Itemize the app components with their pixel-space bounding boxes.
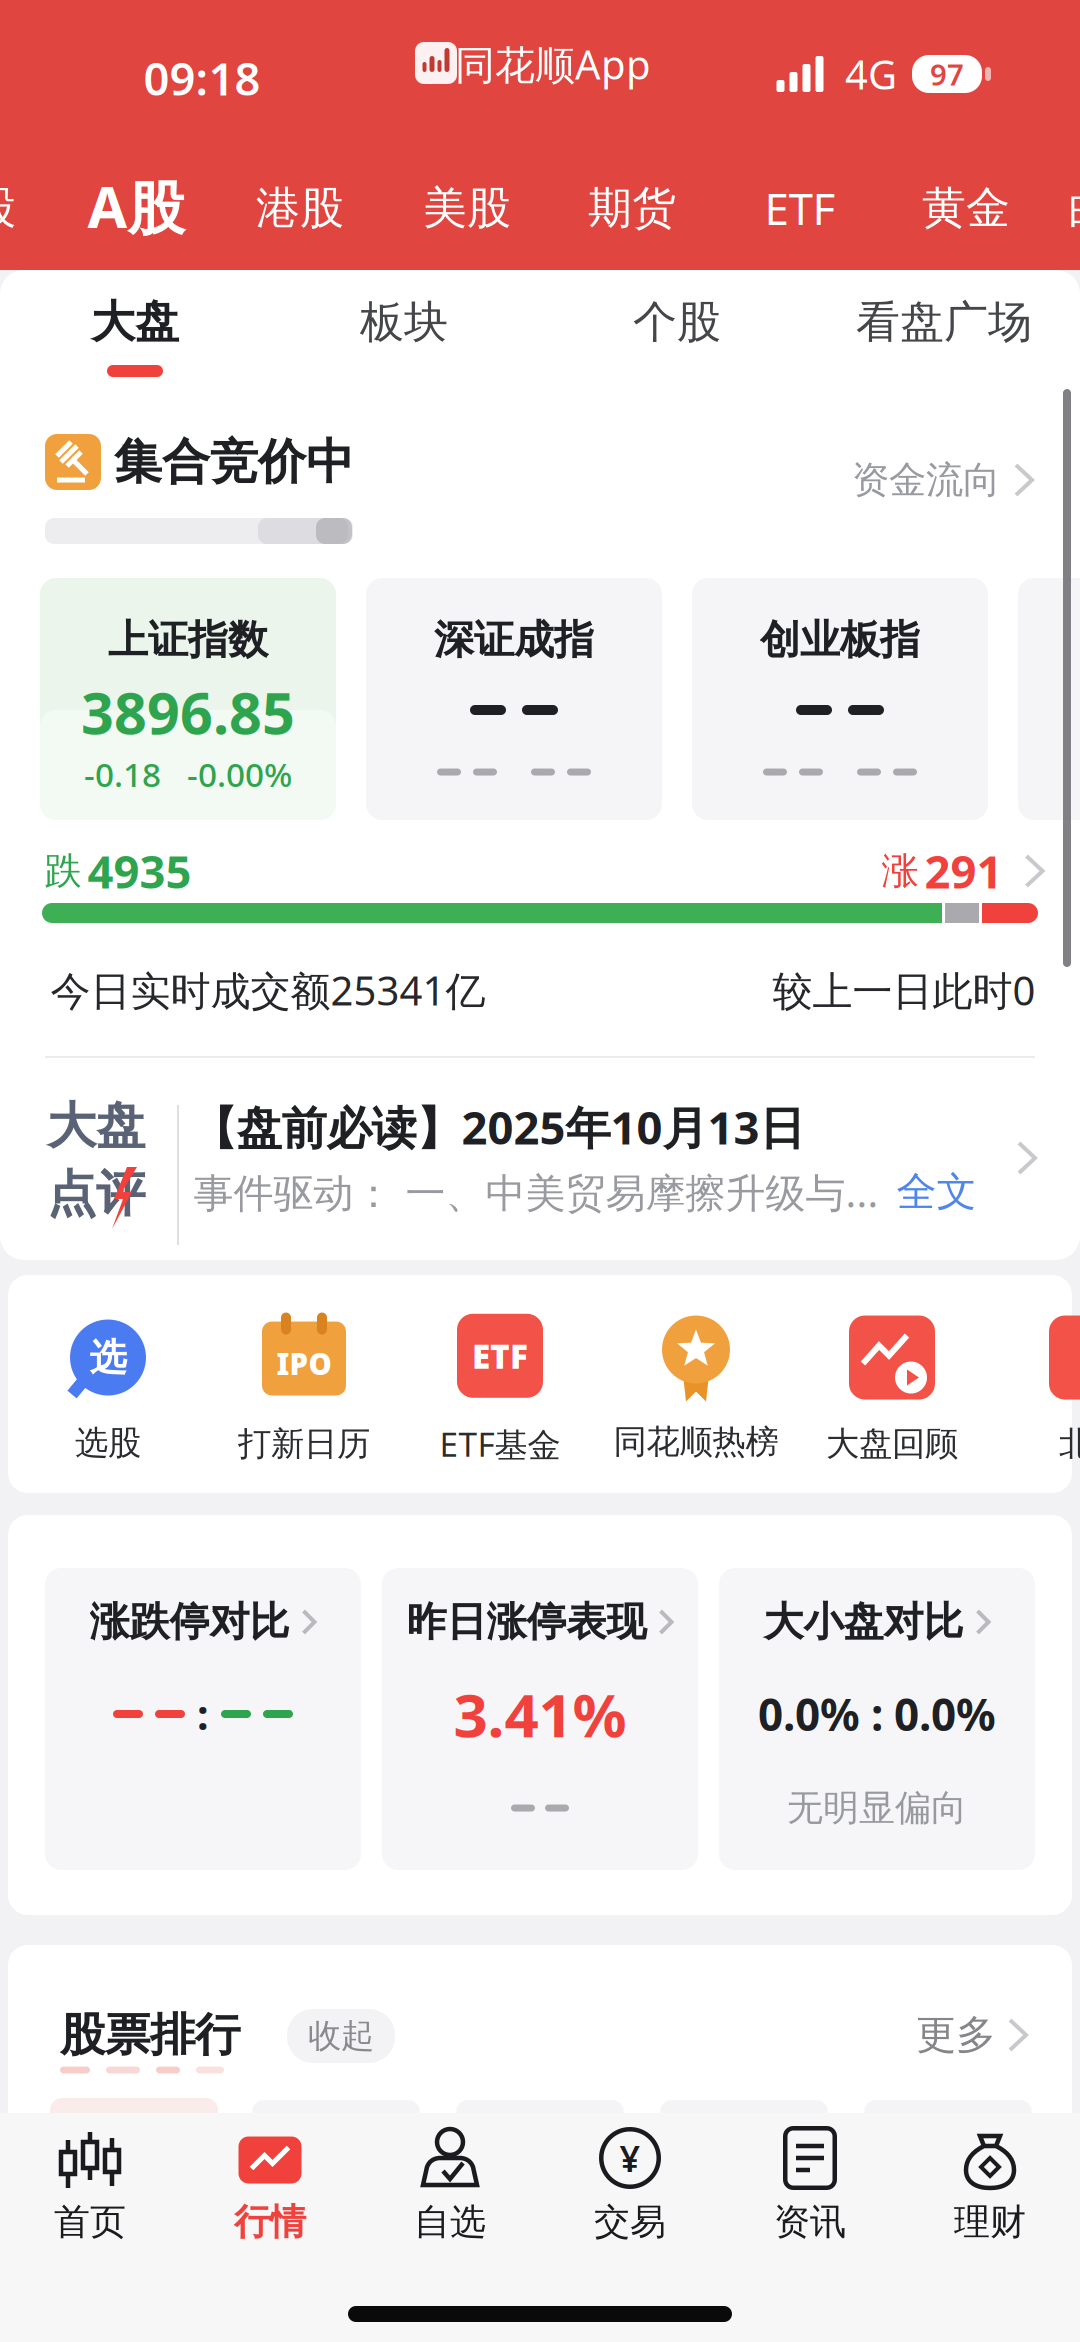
- staticText: 09:18: [143, 48, 260, 108]
- button[interactable]: 期货: [588, 181, 676, 235]
- staticText: 打新日历: [238, 1423, 370, 1464]
- button[interactable]: 黄金: [922, 181, 1010, 235]
- button[interactable]: 看盘广场: [856, 295, 1032, 349]
- staticText: 资讯: [774, 2200, 846, 2244]
- staticText: 黄金: [922, 181, 1010, 235]
- staticText: 理财: [954, 2200, 1026, 2244]
- button[interactable]: 港股: [256, 181, 344, 235]
- staticText: A股: [87, 168, 184, 244]
- button[interactable]: 股: [0, 181, 16, 235]
- button[interactable]: 深证成指: [366, 578, 662, 820]
- staticText: -0.18: [84, 752, 161, 796]
- staticText: 大盘: [47, 1096, 145, 1156]
- staticText: 资金流向: [852, 457, 1000, 503]
- staticText: 更多: [916, 2010, 996, 2059]
- staticText: 事件驱动： 一、中美贸易摩擦升级与...: [193, 1165, 878, 1218]
- staticText: 个股: [633, 295, 721, 349]
- staticText: 291: [924, 841, 1002, 901]
- staticText: 今日实时成交额25341亿: [50, 963, 485, 1016]
- staticText: 北交: [1059, 1423, 1080, 1464]
- button[interactable]: ¥: [595, 2116, 665, 2256]
- button[interactable]: 资讯: [775, 2116, 845, 2256]
- staticText: 期货: [588, 181, 676, 235]
- button[interactable]: 板块: [360, 295, 448, 349]
- button[interactable]: 首页: [55, 2116, 125, 2256]
- staticText: 无明显偏向: [787, 1786, 967, 1830]
- staticText: 大盘: [91, 295, 179, 349]
- staticText: 白: [1068, 181, 1080, 235]
- staticText: -0.00%: [187, 752, 292, 796]
- staticText: 上证指数: [108, 615, 268, 664]
- staticText: ETF: [472, 1334, 528, 1378]
- button[interactable]: ETF: [439, 1314, 560, 1466]
- staticText: 收起: [308, 2015, 374, 2056]
- button[interactable]: 美股: [423, 181, 511, 235]
- staticText: :: [197, 1687, 209, 1741]
- staticText: 大盘回顾: [826, 1423, 958, 1464]
- staticText: 【盘前必读】2025年10月13日: [191, 1097, 804, 1157]
- button[interactable]: 大小盘对比: [719, 1568, 1035, 1870]
- button[interactable]: 收起: [287, 2009, 395, 2063]
- staticText: 集合竞价中: [114, 432, 354, 491]
- staticText: 选股: [75, 1422, 141, 1463]
- button[interactable]: 涨跌停对比: [45, 1568, 361, 1870]
- button[interactable]: 创业板指: [692, 578, 988, 820]
- staticText: 板块: [360, 295, 448, 349]
- button[interactable]: 个股: [633, 295, 721, 349]
- staticText: 选: [89, 1335, 126, 1380]
- staticText: 美股: [423, 181, 511, 235]
- button[interactable]: 行情: [235, 2116, 305, 2256]
- staticText: 点评: [47, 1164, 145, 1224]
- button[interactable]: 选: [68, 1316, 148, 1463]
- button[interactable]: 北交: [1049, 1315, 1080, 1464]
- staticText: 97: [930, 54, 964, 93]
- staticText: ¥: [619, 2134, 640, 2182]
- staticText: 4G: [845, 47, 897, 100]
- button[interactable]: 自选: [415, 2116, 485, 2256]
- button[interactable]: 资金流向: [852, 457, 1034, 503]
- button[interactable]: 大盘: [91, 295, 179, 349]
- staticText: 涨跌停对比: [89, 1597, 289, 1646]
- staticText: 港股: [256, 181, 344, 235]
- staticText: 交易: [594, 2200, 666, 2244]
- button[interactable]: 昨日涨停表现: [382, 1568, 698, 1870]
- staticText: 大小盘对比: [763, 1597, 963, 1646]
- staticText: 3896.85: [81, 674, 295, 750]
- button[interactable]: 大盘回顾: [826, 1315, 958, 1464]
- staticText: 涨: [881, 848, 918, 894]
- staticText: ETF基金: [439, 1422, 560, 1466]
- button[interactable]: 理财: [955, 2116, 1025, 2256]
- button[interactable]: 白: [1068, 181, 1080, 235]
- staticText: 4935: [87, 841, 191, 901]
- button[interactable]: 大盘: [8, 1085, 1072, 1255]
- staticText: 看盘广场: [856, 295, 1032, 349]
- staticText: 股: [0, 181, 16, 235]
- staticText: 深证成指: [434, 615, 594, 664]
- staticText: 昨日涨停表现: [406, 1597, 646, 1646]
- staticText: 3.41%: [453, 1674, 626, 1754]
- staticText: 0.0% : 0.0%: [758, 1685, 996, 1743]
- button[interactable]: 更多: [916, 2010, 1028, 2059]
- staticText: 同花顺热榜: [613, 1421, 778, 1462]
- staticText: 创业板指: [760, 615, 920, 664]
- button[interactable]: 科创50: [1018, 578, 1080, 820]
- staticText: 首页: [54, 2200, 126, 2244]
- button[interactable]: A股: [87, 168, 184, 244]
- button[interactable]: 上证指数: [40, 578, 336, 820]
- staticText: ETF: [764, 179, 835, 237]
- button[interactable]: ETF: [764, 179, 835, 237]
- staticText: 跌: [44, 848, 81, 894]
- staticText: 自选: [414, 2200, 486, 2244]
- staticText: 较上一日此时0: [772, 963, 1035, 1016]
- staticText: 股票排行: [60, 2007, 240, 2063]
- staticText: 行情: [234, 2200, 306, 2244]
- staticText: 全文: [896, 1167, 976, 1216]
- button[interactable]: 同花顺热榜: [613, 1317, 778, 1462]
- button[interactable]: 涨: [881, 841, 1044, 901]
- staticText: IPO: [276, 1344, 331, 1383]
- staticText: 同花顺App: [455, 37, 651, 90]
- button[interactable]: IPO: [238, 1315, 370, 1464]
